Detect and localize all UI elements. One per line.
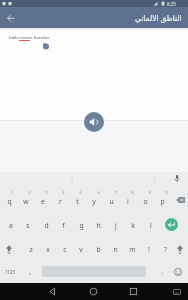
button[interactable]: ? bbox=[156, 239, 174, 259]
button[interactable]: w bbox=[17, 191, 35, 211]
button[interactable]: s bbox=[19, 215, 37, 235]
staticText: c bbox=[63, 245, 67, 254]
button[interactable]: 1 bbox=[3, 182, 21, 202]
staticText: u bbox=[109, 197, 114, 206]
staticText: 3 bbox=[45, 190, 48, 195]
staticText: 2 bbox=[28, 190, 31, 195]
button[interactable]: z bbox=[22, 239, 40, 259]
staticText: 5 bbox=[79, 190, 82, 195]
staticText: r bbox=[59, 197, 62, 206]
staticText: h bbox=[96, 221, 101, 230]
staticText: d bbox=[44, 221, 49, 230]
staticText: f bbox=[62, 221, 65, 230]
button[interactable]: 0 bbox=[157, 182, 175, 202]
staticText: ! bbox=[148, 245, 150, 254]
staticText: 6:25 bbox=[167, 1, 176, 7]
button[interactable]: q bbox=[0, 191, 18, 211]
button[interactable]: o bbox=[136, 191, 154, 211]
button[interactable]: ?123 bbox=[1, 262, 19, 282]
staticText: o bbox=[143, 197, 148, 206]
button[interactable] bbox=[125, 283, 142, 300]
staticText: 6 bbox=[97, 190, 100, 195]
button[interactable] bbox=[170, 264, 186, 280]
staticText: l bbox=[150, 221, 152, 230]
button[interactable]: 5 bbox=[71, 182, 89, 202]
button[interactable] bbox=[4, 12, 17, 25]
button[interactable]: . bbox=[153, 261, 171, 281]
staticText: ?123 bbox=[5, 269, 15, 275]
button[interactable]: a bbox=[2, 215, 20, 235]
staticText: t bbox=[76, 197, 79, 206]
staticText: b bbox=[96, 245, 101, 254]
staticText: 4 bbox=[62, 190, 65, 195]
button[interactable]: 9 bbox=[140, 182, 158, 202]
staticText: g bbox=[79, 221, 84, 230]
staticText: , bbox=[29, 267, 31, 276]
staticText: q bbox=[7, 197, 12, 206]
button[interactable] bbox=[84, 112, 104, 132]
staticText: p bbox=[160, 197, 165, 206]
button[interactable]: l bbox=[142, 215, 160, 235]
staticText: e bbox=[41, 197, 45, 206]
button[interactable]: k bbox=[124, 215, 142, 235]
staticText: s bbox=[26, 221, 30, 230]
button[interactable]: p bbox=[153, 191, 171, 211]
button[interactable]: x bbox=[39, 239, 57, 259]
button[interactable] bbox=[172, 192, 188, 208]
staticText: z bbox=[29, 245, 33, 254]
button[interactable]: d bbox=[37, 215, 55, 235]
button[interactable]: v bbox=[72, 239, 90, 259]
staticText: j bbox=[115, 221, 117, 230]
staticText: a bbox=[9, 221, 13, 230]
button[interactable]: 6 bbox=[89, 182, 107, 202]
staticText: v bbox=[79, 245, 83, 254]
staticText: m bbox=[129, 245, 136, 254]
staticText: . bbox=[161, 267, 163, 276]
button[interactable] bbox=[172, 241, 188, 257]
button[interactable] bbox=[1, 241, 17, 257]
button[interactable]: m bbox=[123, 239, 141, 259]
staticText: n bbox=[113, 245, 118, 254]
button[interactable]: 3 bbox=[37, 182, 55, 202]
button[interactable]: y bbox=[85, 191, 103, 211]
button[interactable] bbox=[165, 218, 178, 231]
staticText: 9 bbox=[148, 190, 151, 195]
button[interactable]: n bbox=[106, 239, 124, 259]
button[interactable]: c bbox=[56, 239, 74, 259]
staticText: 7 bbox=[114, 190, 117, 195]
button[interactable]: u bbox=[102, 191, 120, 211]
staticText: hallo meine frendue bbox=[9, 34, 50, 40]
button[interactable]: j bbox=[107, 215, 125, 235]
button[interactable]: e bbox=[34, 191, 52, 211]
button[interactable]: , bbox=[21, 261, 39, 281]
button[interactable]: t bbox=[68, 191, 86, 211]
staticText: y bbox=[92, 197, 96, 206]
staticText: i bbox=[127, 197, 129, 206]
button[interactable] bbox=[85, 283, 102, 300]
button[interactable] bbox=[44, 283, 61, 300]
button[interactable]: 4 bbox=[54, 182, 72, 202]
button[interactable]: 7 bbox=[106, 182, 124, 202]
button[interactable]: r bbox=[51, 191, 69, 211]
button[interactable]: g bbox=[72, 215, 90, 235]
staticText: k bbox=[131, 221, 135, 230]
button[interactable]: h bbox=[89, 215, 107, 235]
button[interactable]: f bbox=[54, 215, 72, 235]
staticText: الناطق الالماني bbox=[135, 13, 182, 23]
staticText: w bbox=[23, 197, 29, 206]
staticText: 8 bbox=[131, 190, 134, 195]
staticText: 1 bbox=[11, 190, 14, 195]
staticText: ? bbox=[164, 245, 167, 254]
button[interactable]: i bbox=[119, 191, 137, 211]
staticText: 0 bbox=[165, 190, 168, 195]
staticText: x bbox=[46, 245, 50, 254]
button[interactable]: b bbox=[89, 239, 107, 259]
button[interactable]: 2 bbox=[20, 182, 38, 202]
button[interactable]: ! bbox=[140, 239, 158, 259]
button[interactable]: 8 bbox=[123, 182, 141, 202]
